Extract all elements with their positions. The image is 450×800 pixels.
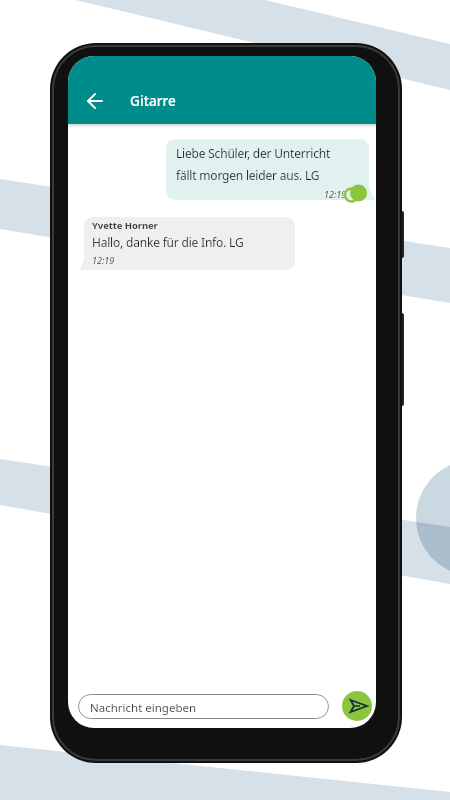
staticText: 12:19 — [324, 188, 347, 200]
button[interactable]: Nachricht eingeben — [78, 694, 329, 719]
staticText: Liebe Schüler, der Unterricht — [176, 145, 331, 161]
staticText: Gitarre — [130, 92, 176, 110]
staticText: Nachricht eingeben — [90, 700, 197, 716]
button[interactable] — [342, 691, 372, 721]
button[interactable] — [81, 87, 109, 115]
staticText: fällt morgen leider aus. LG — [176, 167, 320, 183]
staticText: 12:19 — [92, 254, 115, 266]
staticText: Hallo, danke für die Info. LG — [92, 234, 244, 250]
staticText: Yvette Horner — [92, 219, 158, 232]
